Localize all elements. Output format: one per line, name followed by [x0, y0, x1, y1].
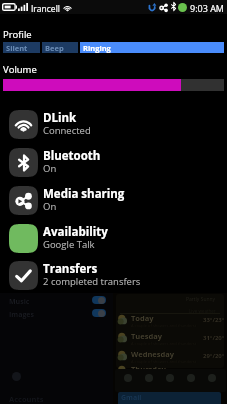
staticText: Partly Sunny [186, 296, 216, 303]
button[interactable]: Toggle [92, 309, 106, 317]
staticText: Silent [6, 43, 28, 53]
staticText: Volume [3, 63, 37, 76]
button[interactable]: DLink [0, 109, 227, 139]
staticText: DLink [43, 110, 77, 126]
staticText: 29°/20° [203, 352, 225, 360]
button[interactable]: Bluetooth [0, 147, 227, 177]
staticText: 31°/20° [203, 334, 225, 342]
staticText: Profile [3, 28, 32, 41]
staticText: Irancell [31, 3, 60, 15]
staticText: On [43, 200, 57, 213]
button[interactable]: Ringing [80, 42, 224, 53]
staticText: On [43, 162, 57, 175]
staticText: Ringing [83, 43, 111, 53]
staticText: Today [131, 313, 154, 323]
staticText: Media sharing [43, 186, 125, 202]
button[interactable]: Beep [42, 42, 78, 53]
staticText: Google Talk [43, 238, 95, 251]
staticText: Tuesday [131, 331, 162, 341]
staticText: Bluetooth [43, 148, 101, 164]
button[interactable]: Silent [3, 42, 40, 53]
staticText: Music [9, 297, 30, 307]
button[interactable]: Availability [0, 223, 227, 253]
button[interactable]: Transfers [0, 260, 227, 290]
staticText: Wednesday [131, 349, 175, 359]
button[interactable]: Media sharing [0, 185, 227, 215]
staticText: 2 completed transfers [43, 275, 141, 288]
staticText: Beep [45, 43, 64, 53]
staticText: Gmail [121, 393, 142, 403]
staticText: 30°/21° [203, 367, 225, 375]
staticText: A couple of showers and thunderst [131, 374, 197, 379]
button[interactable]: Toggle [92, 296, 106, 304]
button[interactable]: Volume [3, 79, 224, 91]
staticText: Availability [43, 224, 108, 240]
staticText: Connected [43, 124, 91, 137]
staticText: Transfers [43, 261, 98, 277]
staticText: Live weather [189, 308, 216, 314]
staticText: 9:03 AM [190, 2, 224, 14]
staticText: Thursday [131, 364, 166, 374]
staticText: 33°/23° [203, 316, 225, 324]
staticText: Accounts [9, 394, 44, 404]
staticText: Images [9, 310, 34, 320]
